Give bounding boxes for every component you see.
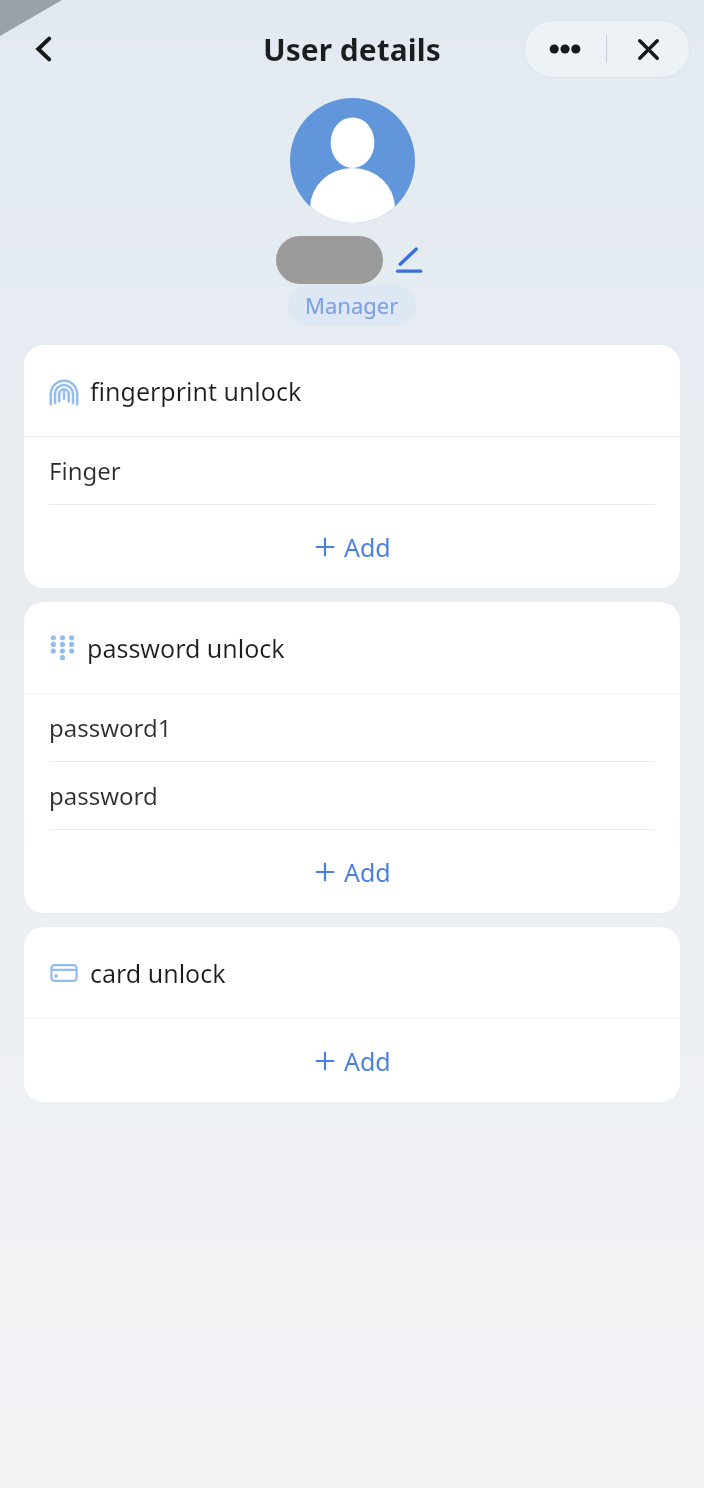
staticText: Add	[344, 855, 391, 889]
staticText: fingerprint unlock	[90, 374, 302, 408]
button[interactable]: Add	[24, 830, 680, 913]
button[interactable]: Add	[24, 1019, 680, 1102]
button[interactable]: password1	[24, 694, 680, 761]
button[interactable]: Finger	[24, 437, 680, 504]
staticText: Manager	[305, 290, 399, 320]
button[interactable]: password	[24, 762, 680, 829]
button[interactable]: Manager	[288, 285, 416, 325]
staticText: password unlock	[87, 631, 285, 665]
staticText: User details	[263, 29, 441, 70]
button[interactable]: Edit name	[389, 240, 429, 280]
button[interactable]: Add	[24, 505, 680, 588]
staticText: Finger	[49, 454, 121, 487]
staticText: password	[49, 779, 158, 812]
staticText: Add	[344, 530, 391, 564]
button[interactable]: password unlock	[24, 602, 680, 693]
button[interactable]: More options	[524, 20, 606, 78]
staticText: card unlock	[90, 956, 226, 990]
button[interactable]: card unlock	[24, 927, 680, 1018]
button[interactable]: fingerprint unlock	[24, 345, 680, 436]
button[interactable]: User avatar	[290, 98, 415, 223]
button[interactable]: Close	[607, 20, 690, 78]
staticText: Add	[344, 1044, 391, 1078]
staticText: password1	[49, 711, 172, 744]
button[interactable]: Back	[16, 21, 72, 77]
